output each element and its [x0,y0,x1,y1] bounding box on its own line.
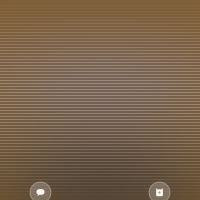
button[interactable]: Camera [149,182,170,200]
button[interactable]: Messages [30,182,51,200]
